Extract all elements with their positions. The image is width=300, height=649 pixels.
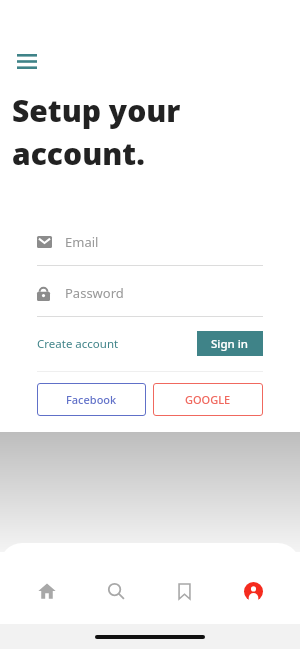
button[interactable]: Password	[37, 280, 263, 306]
button[interactable]: GOOGLE	[153, 383, 263, 416]
button[interactable]: Home	[25, 569, 69, 613]
button[interactable]: Account	[231, 569, 275, 613]
staticText: Password	[65, 284, 124, 302]
staticText: Email	[65, 233, 99, 251]
button[interactable]: Search	[94, 569, 138, 613]
button[interactable]: Create account	[37, 332, 119, 356]
staticText: Create account	[37, 336, 119, 352]
staticText: Setup your	[12, 90, 181, 131]
button[interactable]: Email	[37, 229, 263, 255]
button[interactable]: Bookmarks	[162, 569, 206, 613]
button[interactable]: Sign in	[197, 331, 263, 356]
staticText: Facebook	[66, 392, 117, 407]
staticText: GOOGLE	[185, 392, 231, 407]
staticText: Sign in	[211, 336, 249, 352]
button[interactable]: Facebook	[37, 383, 146, 416]
staticText: account.	[12, 133, 145, 174]
button[interactable]: Menu	[10, 44, 44, 78]
